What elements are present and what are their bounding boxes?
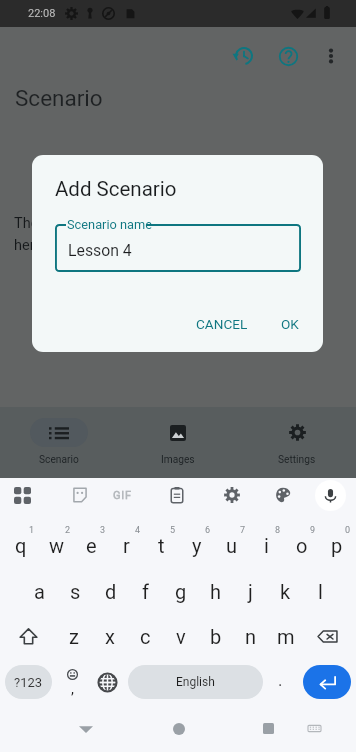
staticText: GIF (113, 489, 132, 502)
button[interactable]: i (249, 521, 284, 567)
staticText: English (176, 675, 215, 689)
staticText: 4 (135, 525, 141, 536)
staticText: CANCEL (196, 316, 248, 332)
button[interactable]: Recents (257, 705, 279, 752)
button[interactable]: s (57, 569, 93, 613)
button[interactable]: History (230, 42, 258, 70)
button[interactable]: z (56, 614, 92, 658)
button[interactable]: Scenario (0, 407, 118, 478)
staticText: g (175, 580, 187, 603)
staticText: f (142, 580, 149, 603)
button[interactable]: Back (75, 705, 97, 752)
staticText: w (49, 534, 65, 557)
button[interactable]: Backspace (309, 614, 345, 658)
staticText: Add Scenario (55, 177, 177, 201)
button[interactable]: Emoji (59, 660, 85, 704)
staticText: u (226, 534, 238, 557)
button[interactable]: . (267, 660, 293, 704)
button[interactable]: l (303, 569, 338, 613)
staticText: There are no scenarios here yet (14, 215, 162, 253)
staticText: j (248, 580, 253, 603)
staticText: p (331, 534, 343, 557)
staticText: Scenario name (67, 217, 153, 232)
button[interactable]: u (214, 521, 249, 567)
staticText: t (158, 534, 165, 557)
button[interactable]: q (3, 521, 39, 567)
staticText: 5 (170, 525, 176, 536)
staticText: 3 (100, 525, 106, 536)
staticText: 2 (65, 525, 71, 536)
staticText: m (277, 625, 295, 648)
button[interactable]: h (198, 569, 233, 613)
staticText: n (245, 625, 257, 648)
staticText: v (176, 625, 186, 648)
button[interactable]: r (109, 521, 144, 567)
button[interactable]: n (233, 614, 268, 658)
button[interactable]: Stickers (66, 481, 94, 509)
staticText: k (280, 580, 291, 603)
staticText: 0 (345, 525, 351, 536)
staticText: r (123, 534, 130, 557)
staticText: i (264, 534, 269, 557)
button[interactable]: Enter (303, 665, 351, 699)
button[interactable]: p (319, 521, 354, 567)
button[interactable]: Change language (94, 660, 120, 704)
button[interactable]: Shift (10, 614, 46, 658)
staticText: d (105, 580, 117, 603)
staticText: y (192, 534, 202, 557)
button[interactable]: Themes (269, 481, 297, 509)
staticText: o (296, 534, 308, 557)
staticText: z (69, 625, 79, 648)
button[interactable]: t (144, 521, 179, 567)
button[interactable]: j (233, 569, 268, 613)
staticText: 1 (29, 525, 35, 536)
staticText: OK (281, 316, 299, 332)
button[interactable]: Settings (237, 407, 356, 478)
button[interactable]: e (74, 521, 109, 567)
button[interactable]: CANCEL (189, 306, 255, 342)
staticText: Images (161, 454, 195, 466)
staticText: s (70, 580, 81, 603)
button[interactable]: English (128, 665, 263, 699)
button[interactable]: Home (168, 705, 190, 752)
staticText: 8 (275, 525, 281, 536)
staticText: . (278, 670, 283, 690)
button[interactable]: More options (317, 42, 345, 70)
button[interactable]: f (128, 569, 163, 613)
button[interactable]: y (179, 521, 214, 567)
button[interactable]: k (268, 569, 303, 613)
button[interactable]: Images (118, 407, 237, 478)
staticText: 9 (310, 525, 316, 536)
staticText: Lesson 4 (68, 241, 132, 260)
button[interactable]: x (92, 614, 128, 658)
button[interactable]: d (93, 569, 128, 613)
button[interactable]: v (163, 614, 198, 658)
staticText: Settings (278, 454, 316, 466)
button[interactable]: Clipboard (163, 481, 191, 509)
staticText: Scenario (39, 454, 79, 466)
button[interactable]: ?123 (5, 665, 52, 699)
staticText: h (210, 580, 222, 603)
button[interactable]: g (163, 569, 198, 613)
staticText: l (318, 580, 323, 603)
button[interactable]: b (198, 614, 233, 658)
staticText: ?123 (14, 675, 43, 690)
button[interactable]: Keyboard settings (218, 481, 246, 509)
button[interactable]: Hide keyboard (303, 705, 325, 752)
staticText: x (105, 625, 115, 648)
staticText: e (86, 534, 97, 557)
staticText: , (71, 680, 74, 698)
button[interactable]: m (268, 614, 303, 658)
button[interactable]: Voice input (315, 480, 346, 511)
button[interactable]: w (39, 521, 74, 567)
staticText: q (15, 534, 27, 557)
button[interactable]: Help (274, 42, 302, 70)
button[interactable]: OK (269, 306, 311, 342)
button[interactable]: a (21, 569, 57, 613)
staticText: 22:08 (28, 7, 56, 20)
staticText: b (210, 625, 222, 648)
button[interactable]: c (128, 614, 163, 658)
staticText: Scenario (15, 85, 103, 111)
button[interactable]: Apps (8, 481, 36, 509)
button[interactable]: o (284, 521, 319, 567)
